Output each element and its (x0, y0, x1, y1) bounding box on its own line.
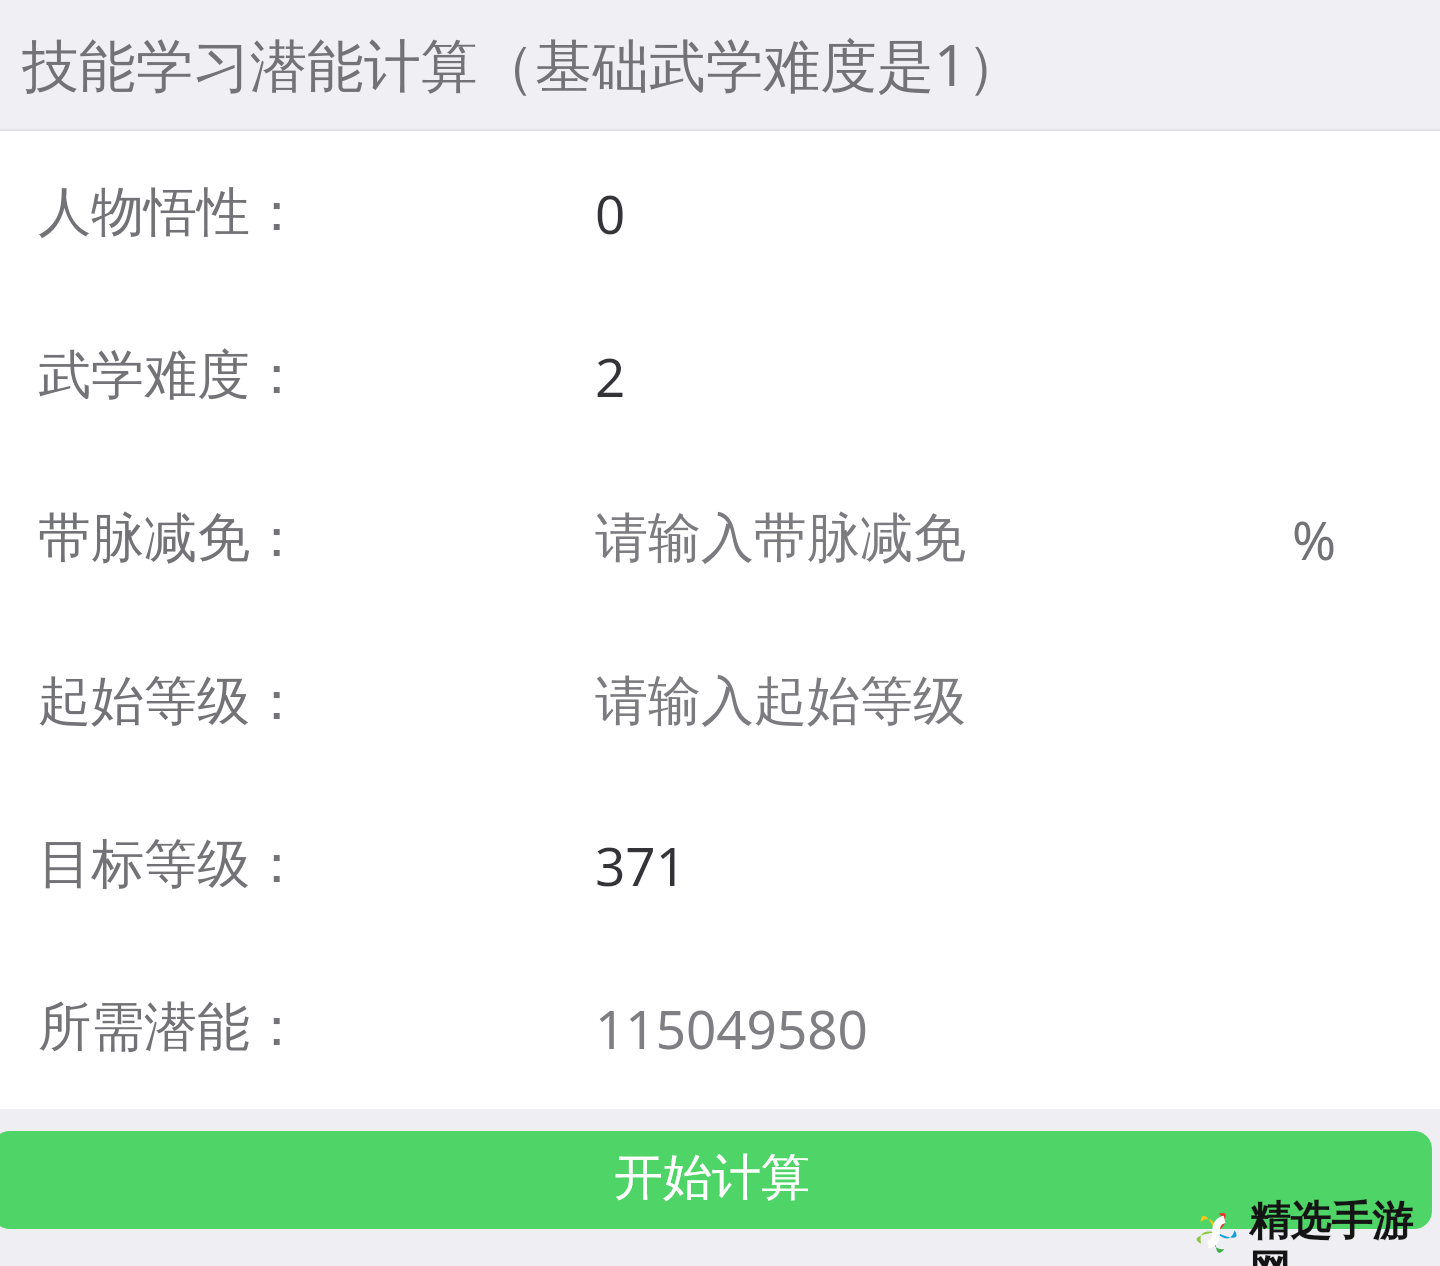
button[interactable]: 目标等级： (0, 783, 1440, 946)
staticText: 请输入起始等级 (595, 668, 966, 735)
staticText: 2 (595, 340, 626, 412)
staticText: 精选手游网 (1249, 1196, 1436, 1266)
staticText: 所需潜能： (38, 994, 303, 1061)
button[interactable]: 武学难度： (0, 294, 1440, 457)
button[interactable]: 起始等级： (0, 620, 1440, 783)
button[interactable]: 人物悟性： (0, 131, 1440, 294)
staticText: 请输入带脉减免 (595, 505, 966, 572)
staticText: 武学难度： (38, 342, 303, 409)
staticText: 人物悟性： (38, 179, 303, 246)
staticText: 115049580 (595, 992, 868, 1064)
button[interactable]: 所需潜能： (0, 946, 1440, 1109)
staticText: 开始计算 (614, 1147, 810, 1209)
staticText: 0 (595, 177, 626, 249)
staticText: 起始等级： (38, 668, 303, 735)
staticText: 技能学习潜能计算（基础武学难度是1） (22, 25, 1024, 103)
button[interactable]: 带脉减免： (0, 457, 1440, 620)
button[interactable]: 开始计算 (0, 1131, 1432, 1229)
staticText: % (1292, 503, 1337, 575)
staticText: 目标等级： (38, 831, 303, 898)
staticText: 371 (595, 829, 686, 901)
staticText: 带脉减免： (38, 505, 303, 572)
